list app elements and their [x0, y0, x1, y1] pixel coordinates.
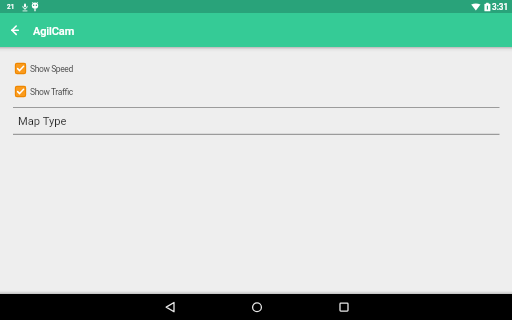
- staticText: Show Traffic: [30, 87, 73, 97]
- staticText: Map Type: [18, 115, 67, 128]
- button[interactable]: Show Speed: [15, 63, 73, 74]
- staticText: Show Speed: [30, 64, 73, 74]
- staticText: AgilCam: [33, 25, 75, 38]
- staticText: 21: [7, 3, 15, 11]
- button[interactable]: [157, 294, 183, 320]
- button[interactable]: [331, 294, 357, 320]
- staticText: 3:31: [492, 2, 509, 12]
- button[interactable]: [0, 13, 32, 47]
- button[interactable]: [244, 294, 270, 320]
- button[interactable]: Show Traffic: [15, 86, 73, 97]
- button[interactable]: Map Type: [0, 109, 512, 133]
